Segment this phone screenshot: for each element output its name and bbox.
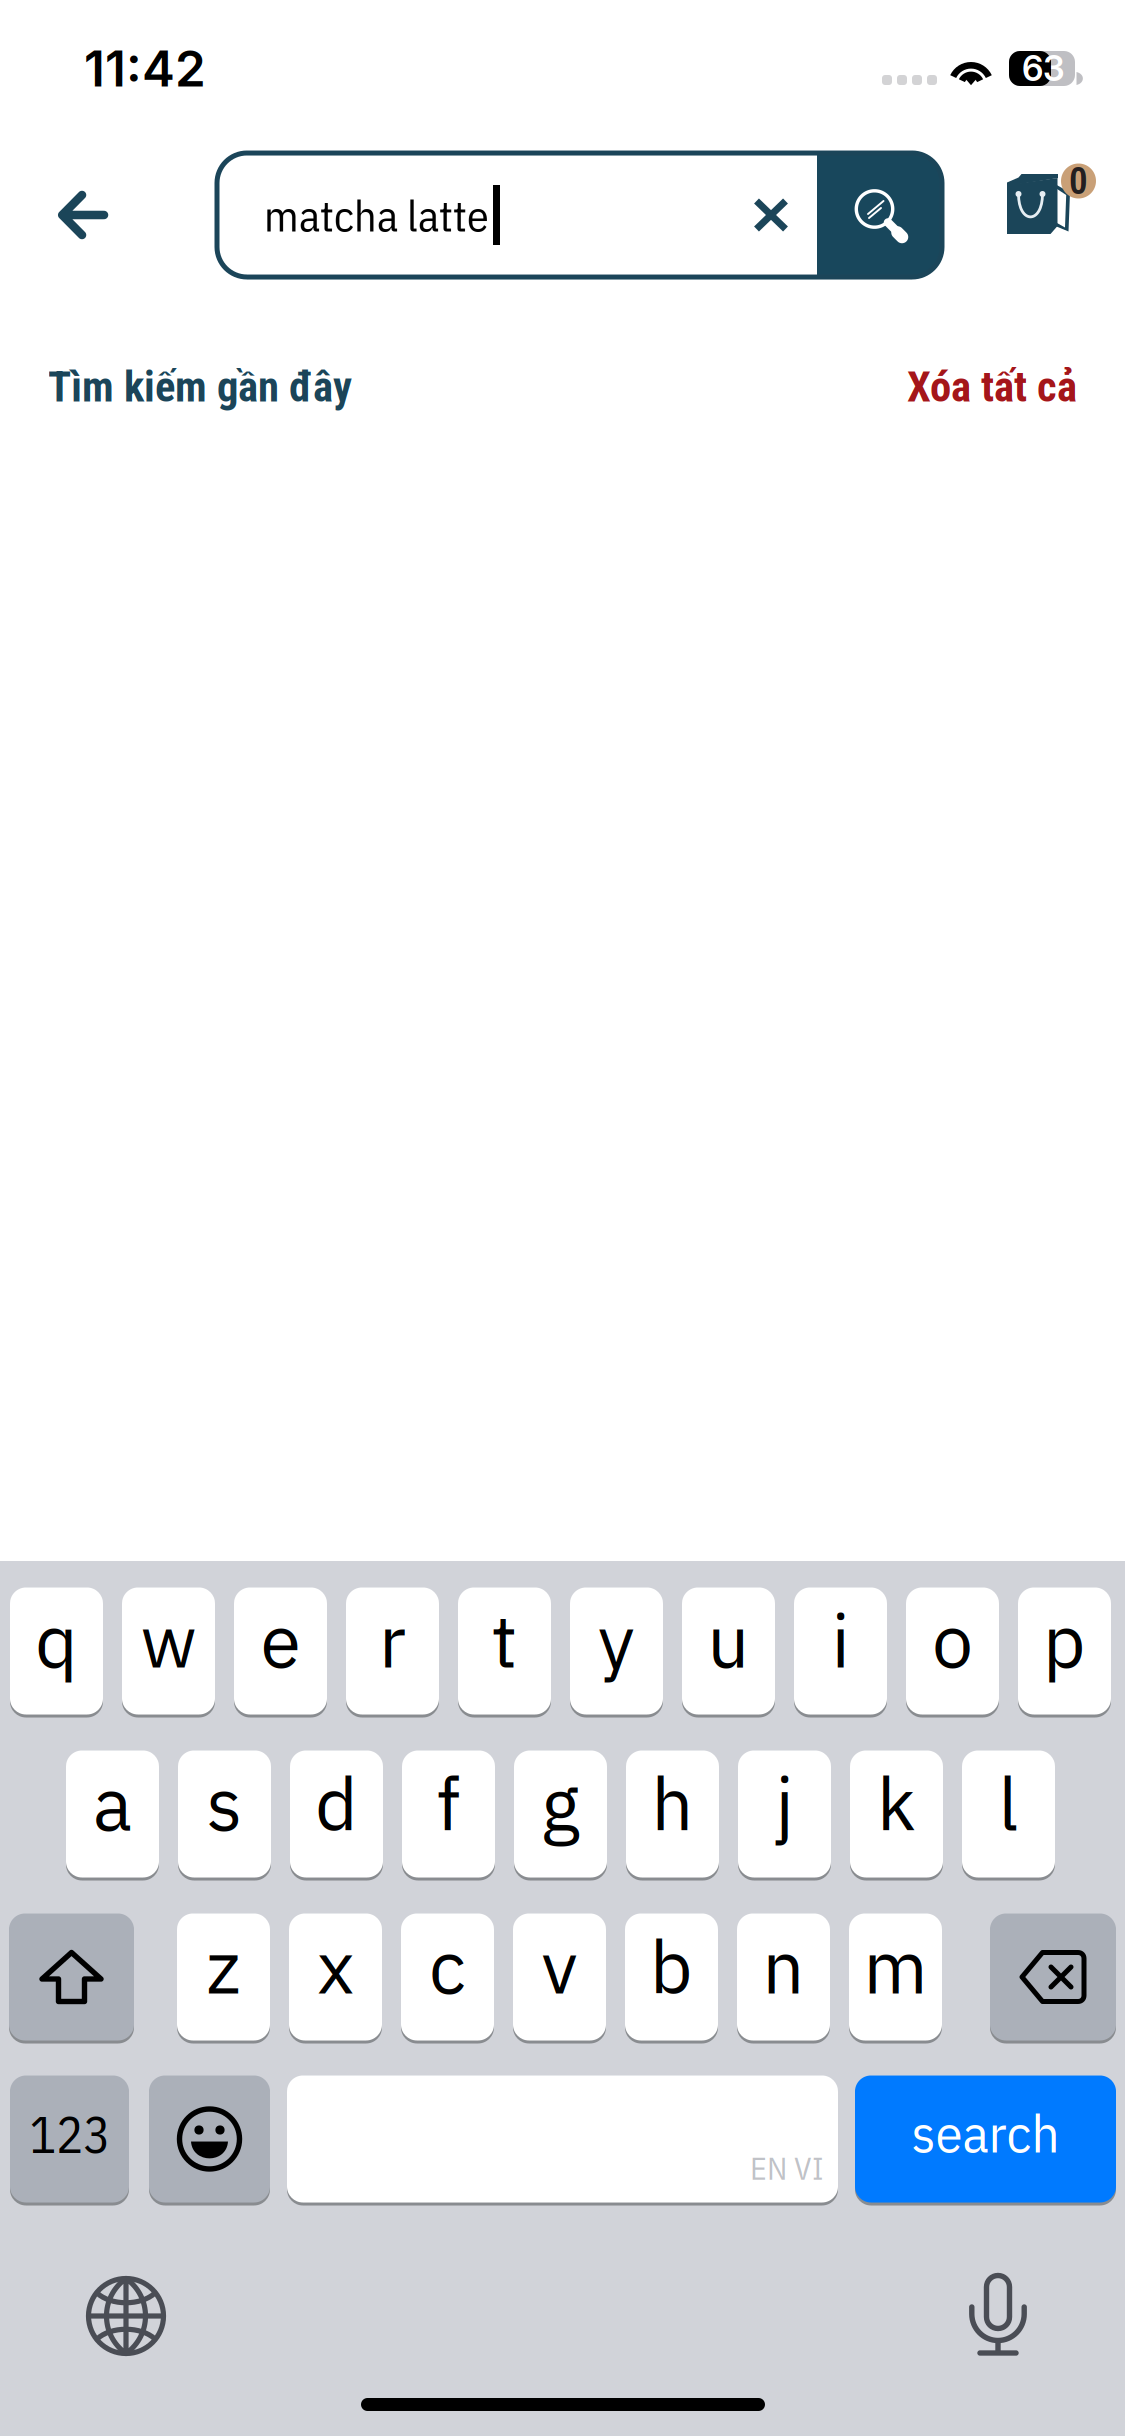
- button[interactable]: Emoji: [149, 2074, 270, 2204]
- button[interactable]: c: [401, 1912, 494, 2042]
- button[interactable]: search: [855, 2074, 1116, 2204]
- staticText: matcha latte: [264, 186, 489, 244]
- staticText: s: [206, 1755, 242, 1851]
- staticText: Tìm kiếm gần đây: [48, 362, 352, 412]
- button[interactable]: z: [177, 1912, 270, 2042]
- staticText: w: [140, 1592, 196, 1688]
- button[interactable]: Cart, 0 items: [1001, 166, 1124, 290]
- staticText: EN VI: [750, 2147, 824, 2188]
- staticText: p: [1043, 1592, 1086, 1688]
- button[interactable]: v: [513, 1912, 606, 2042]
- button[interactable]: a: [66, 1749, 159, 1879]
- staticText: h: [651, 1755, 693, 1851]
- staticText: v: [541, 1918, 577, 2014]
- staticText: 0: [1069, 154, 1087, 206]
- button[interactable]: e: [234, 1586, 327, 1716]
- button[interactable]: j: [738, 1749, 831, 1879]
- staticText: z: [206, 1918, 240, 2014]
- staticText: 11:42: [84, 39, 206, 98]
- staticText: b: [650, 1918, 693, 2014]
- button[interactable]: b: [625, 1912, 718, 2042]
- staticText: j: [775, 1755, 793, 1851]
- button[interactable]: w: [122, 1586, 215, 1716]
- staticText: o: [932, 1592, 973, 1688]
- staticText: k: [877, 1755, 916, 1851]
- button[interactable]: Next keyboard: [66, 2261, 186, 2371]
- button[interactable]: Space: [287, 2074, 838, 2204]
- button[interactable]: d: [290, 1749, 383, 1879]
- staticText: d: [315, 1755, 358, 1851]
- staticText: l: [998, 1755, 1018, 1851]
- button[interactable]: k: [850, 1749, 943, 1879]
- staticText: a: [93, 1755, 132, 1851]
- button[interactable]: p: [1018, 1586, 1111, 1716]
- staticText: g: [541, 1755, 580, 1851]
- staticText: 63: [1022, 47, 1065, 89]
- button[interactable]: g: [514, 1749, 607, 1879]
- button[interactable]: s: [178, 1749, 271, 1879]
- button[interactable]: l: [962, 1749, 1055, 1879]
- button[interactable]: o: [906, 1586, 999, 1716]
- button[interactable]: Search: [817, 153, 942, 277]
- staticText: c: [429, 1918, 466, 2014]
- staticText: u: [707, 1592, 749, 1688]
- button[interactable]: y: [570, 1586, 663, 1716]
- button[interactable]: u: [682, 1586, 775, 1716]
- staticText: y: [598, 1592, 635, 1688]
- button[interactable]: Delete: [990, 1912, 1116, 2042]
- staticText: e: [260, 1592, 300, 1688]
- staticText: n: [762, 1918, 804, 2014]
- staticText: m: [863, 1918, 927, 2014]
- staticText: x: [317, 1918, 354, 2014]
- button[interactable]: h: [626, 1749, 719, 1879]
- staticText: t: [491, 1592, 517, 1688]
- button[interactable]: q: [10, 1586, 103, 1716]
- button[interactable]: n: [737, 1912, 830, 2042]
- button[interactable]: r: [346, 1586, 439, 1716]
- button[interactable]: Dictation: [938, 2259, 1058, 2369]
- button[interactable]: m: [849, 1912, 942, 2042]
- staticText: i: [831, 1592, 849, 1688]
- staticText: Xóa tất cả: [907, 362, 1077, 412]
- button[interactable]: x: [289, 1912, 382, 2042]
- button[interactable]: Xóa tất cả: [877, 362, 1077, 412]
- button[interactable]: f: [402, 1749, 495, 1879]
- staticText: r: [379, 1592, 406, 1688]
- button[interactable]: Clear text: [725, 153, 817, 277]
- button[interactable]: Shift: [9, 1912, 134, 2042]
- staticText: f: [436, 1755, 460, 1851]
- button[interactable]: Back: [28, 153, 138, 277]
- staticText: search: [911, 2099, 1059, 2167]
- button[interactable]: i: [794, 1586, 887, 1716]
- staticText: q: [35, 1592, 78, 1688]
- button[interactable]: t: [458, 1586, 551, 1716]
- staticText: 123: [29, 2101, 110, 2167]
- button[interactable]: 123: [10, 2074, 129, 2204]
